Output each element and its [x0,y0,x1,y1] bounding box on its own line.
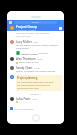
staticText: that's great news, let's celebrate [16,32,49,35]
staticText: Search [32,21,39,24]
button[interactable]: Luka Pavic [7,96,64,103]
button[interactable]: Write a message [10,105,61,112]
staticText: 11:02 [32,98,38,101]
staticText: thanks, I'll update the shared calendar [16,70,56,73]
staticText: Design budget [21,52,38,55]
staticText: final.xlsx [39,52,48,55]
staticText: Project Group [16,25,38,29]
button[interactable]: Project planning [10,75,62,91]
staticText: later this week [16,35,31,38]
staticText: Wednesday? [16,47,29,50]
staticText: Sandy Chan [16,66,33,70]
button[interactable]: Search [14,21,57,24]
staticText: 10:41 [33,41,39,44]
staticText: Project planning [17,76,38,80]
staticText: upcoming sprint tasks [17,87,39,90]
staticText: can we please move the budget review to [16,44,59,47]
staticText: Tue Dec 11 [30,93,41,96]
button[interactable]: Home [32,114,40,122]
button[interactable]: Sandy Chan [7,64,64,73]
button[interactable]: Design budget [16,51,48,55]
staticText: the new roadmap and finalise the [17,84,50,87]
staticText: works great for me [19,61,39,64]
button[interactable]: Lucy Muller [7,38,64,55]
staticText: We are meeting tomorrow to go over [17,81,54,84]
staticText: Alex Thomson [16,57,36,61]
staticText: Lucy Muller [16,40,32,44]
staticText: 5 members, 3 online [16,29,37,31]
button[interactable]: Alex Thomson [7,55,64,64]
staticText: 10:43 [37,58,43,61]
staticText: Write a message [15,107,34,110]
staticText: 10:45 [34,67,40,70]
staticText: Luka Pavic [16,97,31,101]
